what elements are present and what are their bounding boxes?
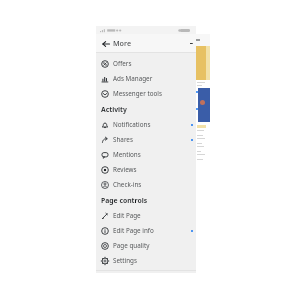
button[interactable]: Check-ins bbox=[96, 177, 196, 192]
staticText: Offers bbox=[113, 59, 132, 68]
staticText: Page controls bbox=[101, 196, 148, 205]
button[interactable]: More options bbox=[189, 40, 195, 46]
button[interactable]: Reviews bbox=[96, 162, 196, 177]
button[interactable]: Settings bbox=[96, 253, 196, 268]
staticText: Check-ins bbox=[113, 180, 142, 189]
staticText: Page quality bbox=[113, 241, 150, 250]
button[interactable]: Ads Manager bbox=[96, 71, 196, 86]
staticText: Ads Manager bbox=[113, 74, 153, 83]
button[interactable]: Edit Page info bbox=[96, 223, 196, 238]
staticText: Activity bbox=[101, 105, 127, 114]
staticText: Mentions bbox=[113, 150, 141, 159]
staticText: Shares bbox=[113, 135, 133, 144]
staticText: Reviews bbox=[113, 165, 137, 174]
button[interactable]: Notifications bbox=[96, 117, 196, 132]
staticText: Notifications bbox=[113, 120, 151, 129]
staticText: Messenger tools bbox=[113, 89, 162, 98]
staticText: More bbox=[113, 38, 132, 48]
button[interactable]: Messenger tools bbox=[96, 86, 196, 101]
button[interactable]: Offers bbox=[96, 56, 196, 71]
staticText: Edit Page bbox=[113, 211, 141, 220]
button[interactable]: Edit Page bbox=[96, 208, 196, 223]
button[interactable]: Back bbox=[100, 38, 111, 49]
button[interactable]: Mentions bbox=[96, 147, 196, 162]
staticText: Edit Page info bbox=[113, 226, 154, 235]
staticText: Settings bbox=[113, 256, 137, 265]
button[interactable]: Page quality bbox=[96, 238, 196, 253]
button[interactable]: Shares bbox=[96, 132, 196, 147]
